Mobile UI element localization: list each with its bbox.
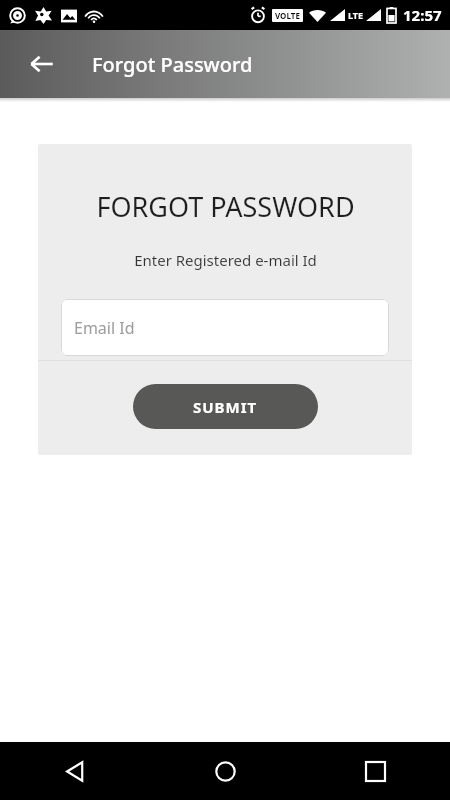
button[interactable]: SUBMIT <box>133 384 318 429</box>
staticText: Email Id <box>74 317 135 339</box>
staticText: 12:57 <box>403 5 442 25</box>
staticText: VOLTE <box>275 10 300 21</box>
staticText: SUBMIT <box>193 397 258 417</box>
staticText: Enter Registered e-mail Id <box>134 250 317 270</box>
button[interactable]: Email Id <box>61 299 389 356</box>
button[interactable]: Back <box>18 40 66 88</box>
button[interactable]: Home <box>150 742 300 800</box>
staticText: LTE <box>348 9 364 21</box>
button[interactable]: Recent apps <box>300 742 450 800</box>
staticText: Forgot Password <box>92 51 253 78</box>
staticText: FORGOT PASSWORD <box>96 188 355 225</box>
button[interactable]: Back <box>0 742 150 800</box>
